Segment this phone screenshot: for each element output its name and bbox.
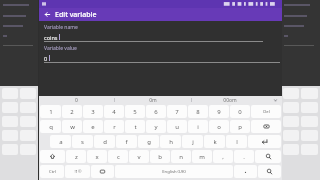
staticText: 1 xyxy=(49,108,53,116)
staticText: 00om xyxy=(223,97,237,104)
staticText: 0m xyxy=(149,97,157,104)
staticText: 2 xyxy=(70,108,74,116)
button[interactable]: Navigate up xyxy=(39,8,55,21)
button[interactable]: 9 xyxy=(209,105,229,118)
staticText: z xyxy=(75,153,78,161)
staticText: v xyxy=(137,153,141,161)
button[interactable]: w xyxy=(62,120,82,133)
button[interactable]: u xyxy=(167,120,187,133)
staticText: t xyxy=(134,123,137,131)
button[interactable]: i xyxy=(188,120,208,133)
button[interactable]: q xyxy=(40,120,61,133)
staticText: coins xyxy=(44,34,58,40)
button[interactable]: l xyxy=(226,135,247,148)
staticText: x xyxy=(95,153,99,161)
staticText: a xyxy=(59,138,63,146)
button[interactable]: m xyxy=(192,150,212,163)
button[interactable]: 7 xyxy=(167,105,187,118)
button[interactable]: s xyxy=(72,135,93,148)
staticText: e xyxy=(91,123,95,131)
button[interactable]: Ctrl xyxy=(40,165,64,178)
button[interactable]: r xyxy=(104,120,124,133)
button[interactable]: y xyxy=(146,120,166,133)
button[interactable]: h xyxy=(160,135,181,148)
staticText: u xyxy=(175,123,179,131)
button[interactable]: f xyxy=(116,135,137,148)
button[interactable]: p xyxy=(230,120,250,133)
button[interactable]: !1© xyxy=(65,165,90,178)
button[interactable]: 8 xyxy=(188,105,208,118)
staticText: 0 xyxy=(75,97,78,104)
button[interactable]: 2 xyxy=(62,105,82,118)
staticText: w xyxy=(70,123,75,131)
button[interactable]: e xyxy=(83,120,103,133)
button[interactable]: 1 xyxy=(40,105,61,118)
staticText: r xyxy=(113,123,116,131)
button[interactable]: Shift xyxy=(40,150,65,163)
button[interactable]: z xyxy=(66,150,86,163)
button[interactable]: x xyxy=(87,150,107,163)
button[interactable]: 00om xyxy=(192,96,268,104)
button[interactable]: Del xyxy=(251,105,281,118)
staticText: i xyxy=(197,123,199,131)
button[interactable]: 0 xyxy=(39,96,114,104)
staticText: l xyxy=(236,138,238,146)
button[interactable]: 0m xyxy=(115,96,191,104)
staticText: k xyxy=(213,138,217,146)
button[interactable]: j xyxy=(182,135,203,148)
staticText: 0 xyxy=(44,55,48,61)
button[interactable]: a xyxy=(50,135,71,148)
staticText: f xyxy=(125,138,128,146)
staticText: Variable value xyxy=(44,45,77,52)
button[interactable]: k xyxy=(204,135,225,148)
button[interactable]: , xyxy=(213,150,233,163)
staticText: 9 xyxy=(217,108,221,116)
button[interactable]: c xyxy=(108,150,128,163)
staticText: p xyxy=(238,123,242,131)
button[interactable]: g xyxy=(138,135,159,148)
button[interactable]: v xyxy=(129,150,149,163)
button[interactable]: t xyxy=(125,120,145,133)
staticText: q xyxy=(49,123,53,131)
staticText: 6 xyxy=(154,108,158,116)
staticText: y xyxy=(154,123,158,131)
staticText: m xyxy=(199,153,205,161)
staticText: 7 xyxy=(175,108,179,116)
button[interactable]: d xyxy=(94,135,115,148)
button[interactable]: More suggestions xyxy=(268,96,282,104)
button[interactable]: 5 xyxy=(125,105,145,118)
button[interactable]: n xyxy=(171,150,191,163)
staticText: , xyxy=(222,153,224,161)
staticText: s xyxy=(81,138,84,146)
button[interactable]: 3 xyxy=(83,105,103,118)
button[interactable]: English (UK) xyxy=(115,165,233,178)
button[interactable]: Backspace xyxy=(251,120,281,133)
button[interactable]: 6 xyxy=(146,105,166,118)
button[interactable]: Search xyxy=(255,150,281,163)
staticText: d xyxy=(103,138,107,146)
staticText: g xyxy=(147,138,151,146)
staticText: Variable name xyxy=(44,24,78,31)
staticText: 5 xyxy=(133,108,137,116)
button[interactable]: coins xyxy=(44,34,282,40)
button[interactable]: 4 xyxy=(104,105,124,118)
button[interactable]: Keyboard options xyxy=(91,165,114,178)
staticText: 8 xyxy=(196,108,200,116)
button[interactable]: Search xyxy=(258,165,281,178)
staticText: Ctrl xyxy=(49,169,56,175)
staticText: . xyxy=(243,153,245,161)
button[interactable]: b xyxy=(150,150,170,163)
staticText: 4 xyxy=(112,108,116,116)
button[interactable]: . xyxy=(234,150,254,163)
button[interactable]: Enter xyxy=(248,135,281,148)
staticText: Del xyxy=(263,109,270,115)
staticText: English (UK) xyxy=(162,169,186,175)
staticText: o xyxy=(217,123,221,131)
button[interactable]: o xyxy=(209,120,229,133)
button[interactable]: 0 xyxy=(230,105,250,118)
button[interactable]: 0 xyxy=(44,55,282,61)
staticText: c xyxy=(117,153,120,161)
staticText: n xyxy=(179,153,183,161)
button[interactable]: Comma xyxy=(234,165,257,178)
staticText: Edit variable xyxy=(55,10,97,20)
